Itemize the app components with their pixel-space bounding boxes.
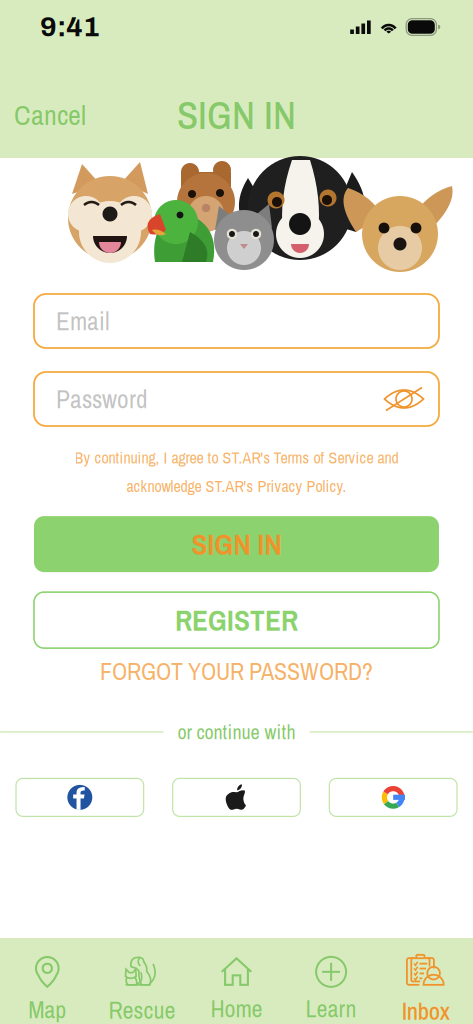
staticText: Home <box>210 992 262 1024</box>
button[interactable]: Learn <box>284 937 378 1024</box>
staticText: SIGN IN <box>191 524 281 564</box>
staticText: REGISTER <box>175 600 298 640</box>
button[interactable]: Continue with Google <box>329 778 457 816</box>
staticText: acknowledge ST.AR's Privacy Policy. <box>126 476 346 497</box>
staticText: 9:41 <box>40 12 100 42</box>
button[interactable]: SIGN IN <box>34 516 439 572</box>
staticText: Rescue <box>108 994 175 1024</box>
staticText: Learn <box>306 992 357 1024</box>
staticText: By continuing, I agree to ST.AR's Terms … <box>74 447 398 469</box>
staticText: Inbox <box>402 995 450 1024</box>
button[interactable]: Home <box>189 937 284 1024</box>
button[interactable]: Map <box>0 936 95 1024</box>
button[interactable]: REGISTER <box>34 592 439 648</box>
button[interactable]: Continue with Apple <box>173 778 300 816</box>
staticText: or continue with <box>177 718 295 745</box>
staticText: SIGN IN <box>177 89 296 141</box>
staticText: Map <box>28 993 66 1024</box>
staticText: FORGOT YOUR PASSWORD? <box>100 655 373 687</box>
button[interactable]: Continue with Facebook <box>16 778 144 816</box>
staticText: Password <box>56 382 148 416</box>
staticText: Email <box>56 304 110 338</box>
staticText: Cancel <box>14 96 86 134</box>
button[interactable]: FORGOT YOUR PASSWORD? <box>100 650 373 692</box>
button[interactable]: Cancel <box>0 86 100 144</box>
button[interactable]: Inbox <box>378 935 473 1024</box>
button[interactable]: Rescue <box>95 936 189 1024</box>
